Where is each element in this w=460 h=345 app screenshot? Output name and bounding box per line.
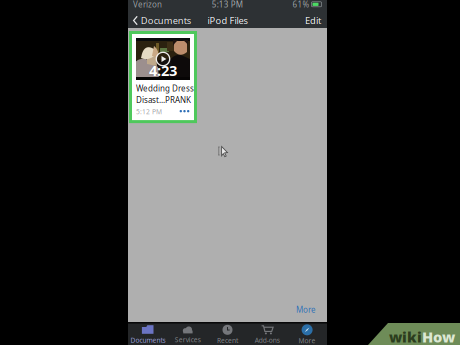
staticText: 4:23 <box>149 60 177 80</box>
button[interactable]: Add-ons <box>247 323 287 345</box>
button[interactable]: Services <box>168 323 208 345</box>
staticText: Documents <box>141 14 191 27</box>
staticText: Edit <box>305 14 321 27</box>
button[interactable]: Edit <box>299 13 327 28</box>
button[interactable]: More <box>287 323 327 345</box>
staticText: 5:13 PM <box>212 0 243 10</box>
staticText: Recent <box>217 336 238 345</box>
staticText: More <box>296 304 316 315</box>
staticText: iPod Files <box>207 14 247 27</box>
staticText: Disast...PRANK <box>136 95 191 105</box>
staticText: 5:12 PM <box>136 107 162 116</box>
button[interactable]: 4:23 <box>129 31 197 123</box>
staticText: Documents <box>130 336 165 345</box>
staticText: More <box>299 336 316 345</box>
staticText: Verizon <box>133 0 162 10</box>
staticText: How <box>422 327 455 345</box>
button[interactable]: Documents <box>128 13 195 28</box>
button[interactable]: More <box>289 301 323 318</box>
staticText: Add-ons <box>255 336 280 345</box>
button[interactable]: Recent <box>208 323 247 345</box>
staticText: Wedding Dress <box>136 83 194 94</box>
staticText: 61% <box>292 0 309 10</box>
staticText: Services <box>175 335 201 344</box>
staticText: wiki <box>389 327 422 345</box>
button[interactable]: Documents <box>128 323 168 345</box>
